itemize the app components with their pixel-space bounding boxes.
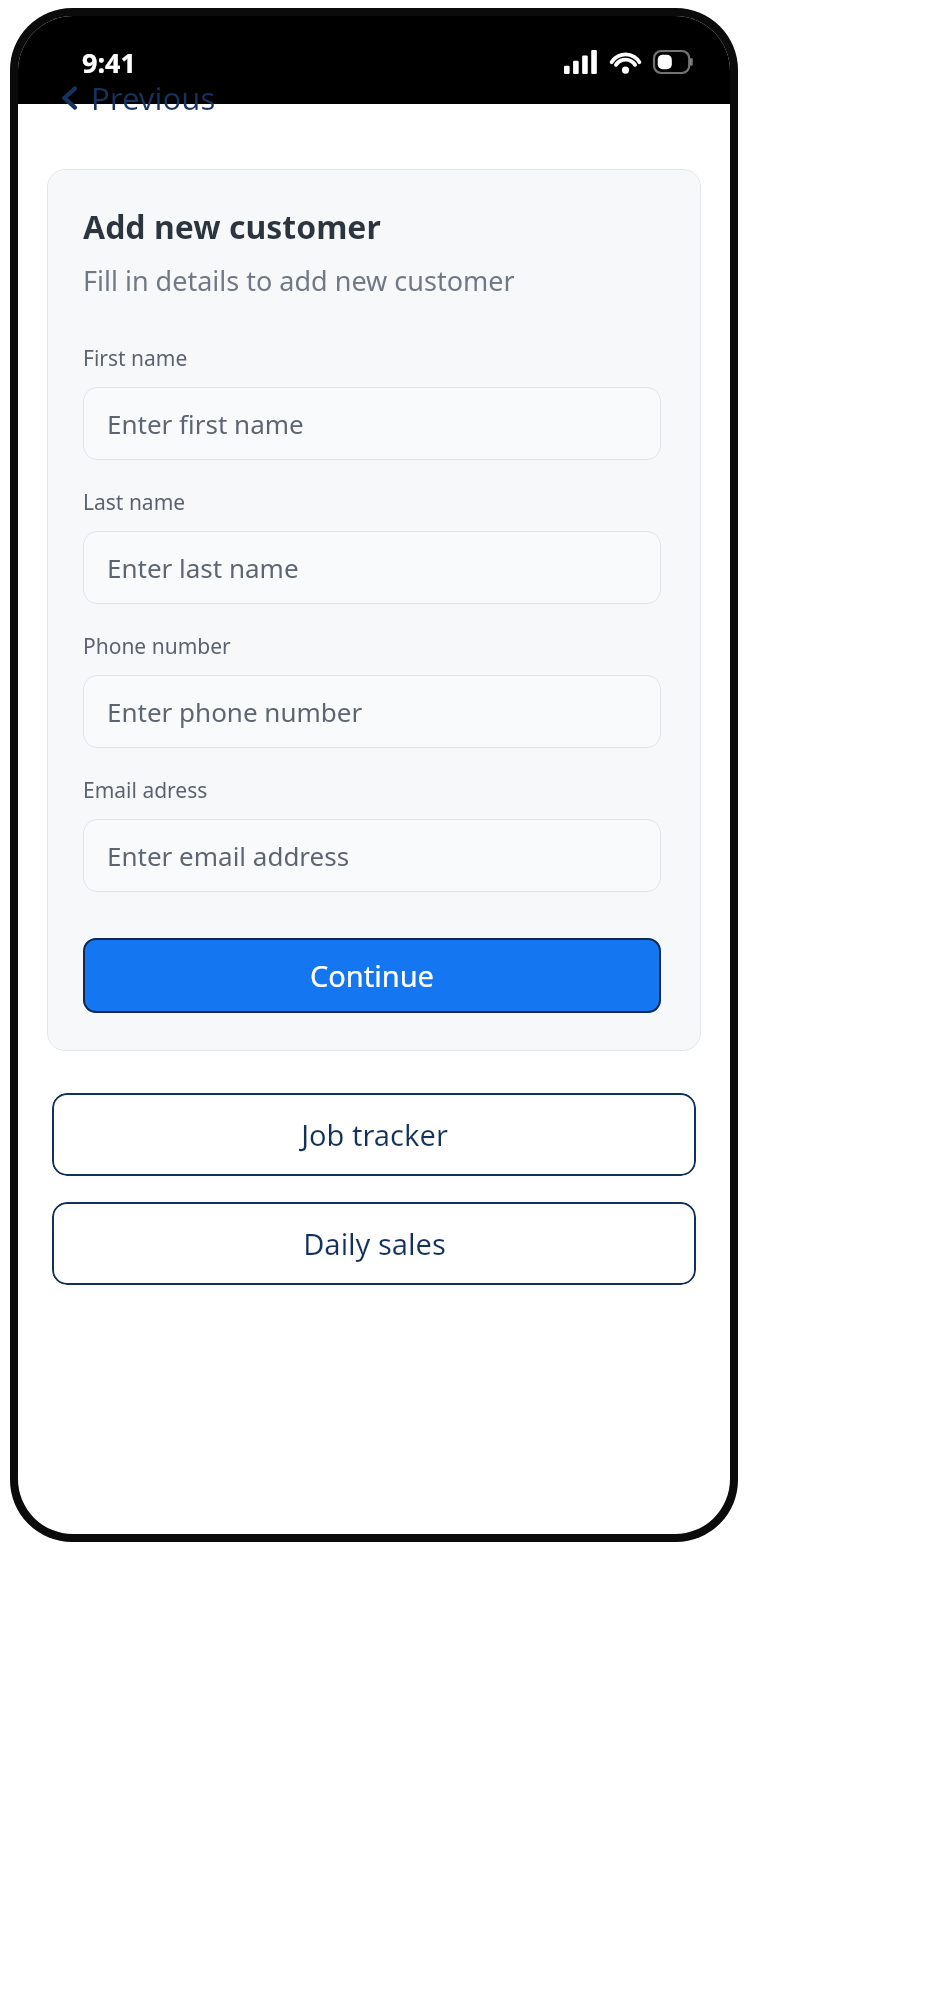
staticText: Last name: [83, 488, 186, 517]
staticText: Enter email address: [107, 838, 350, 873]
staticText: Daily sales: [303, 1224, 446, 1263]
staticText: 9:41: [82, 44, 136, 81]
staticText: Job tracker: [301, 1115, 448, 1154]
staticText: First name: [83, 344, 188, 373]
staticText: Phone number: [83, 632, 231, 661]
staticText: Fill in details to add new customer: [83, 262, 515, 299]
staticText: Enter phone number: [107, 694, 363, 729]
button[interactable]: Enter last name: [83, 531, 661, 604]
staticText: Continue: [310, 956, 434, 995]
button[interactable]: Job tracker: [52, 1093, 696, 1176]
button[interactable]: Enter email address: [83, 819, 661, 892]
button[interactable]: Previous: [52, 71, 224, 125]
staticText: Add new customer: [83, 205, 381, 249]
button[interactable]: Daily sales: [52, 1202, 696, 1285]
staticText: Email adress: [83, 776, 208, 805]
button[interactable]: Enter first name: [83, 387, 661, 460]
staticText: Previous: [91, 77, 216, 119]
staticText: Enter last name: [107, 550, 299, 585]
button[interactable]: Enter phone number: [83, 675, 661, 748]
staticText: Enter first name: [107, 406, 304, 441]
button[interactable]: Continue: [83, 938, 661, 1013]
